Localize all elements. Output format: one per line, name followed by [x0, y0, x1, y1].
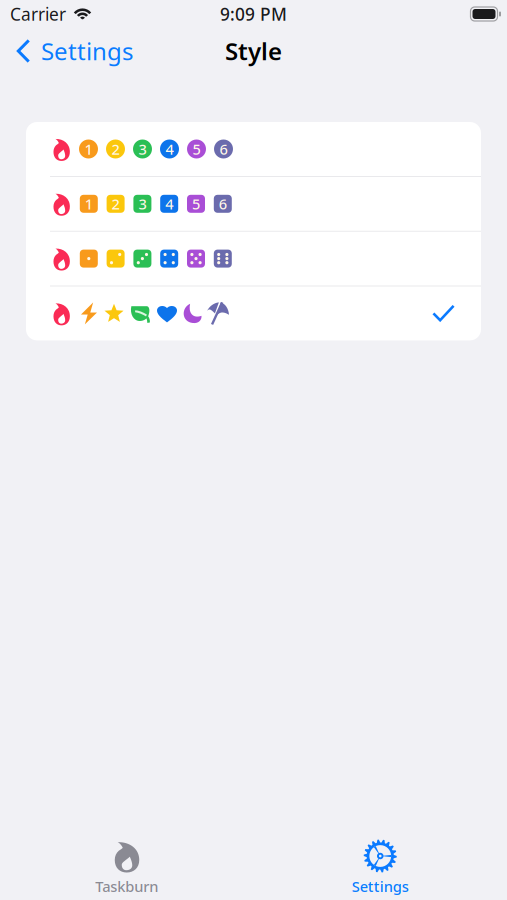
staticText: 1	[84, 139, 92, 159]
staticText: 4	[165, 139, 173, 159]
staticText: 2	[111, 139, 119, 159]
button[interactable]	[26, 232, 481, 286]
staticText: 6	[219, 139, 227, 159]
staticText: 6	[219, 194, 227, 214]
button[interactable]: Settings	[0, 28, 143, 72]
button[interactable]: Settings	[253, 834, 507, 896]
staticText: Style	[225, 35, 282, 67]
staticText: Carrier	[10, 2, 66, 25]
staticText: Settings	[41, 35, 133, 67]
staticText: 4	[165, 194, 173, 214]
button[interactable]	[26, 286, 481, 340]
staticText: Settings	[352, 876, 409, 896]
staticText: 3	[138, 139, 146, 159]
staticText: 5	[192, 194, 200, 214]
staticText: 1	[85, 194, 93, 214]
staticText: 5	[192, 139, 200, 159]
staticText: 9:09 PM	[220, 2, 287, 25]
staticText: 2	[112, 194, 120, 214]
button[interactable]: 1	[26, 177, 481, 231]
button[interactable]: 1	[26, 122, 481, 176]
staticText: Taskburn	[95, 876, 158, 896]
staticText: 3	[138, 194, 146, 214]
button[interactable]: Taskburn	[0, 834, 253, 896]
